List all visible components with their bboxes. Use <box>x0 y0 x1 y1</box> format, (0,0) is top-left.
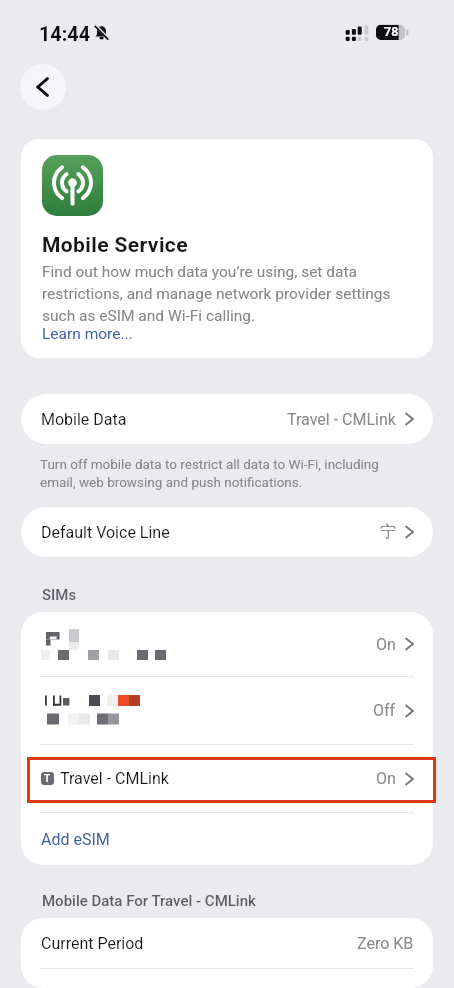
staticText: SIMs <box>42 586 77 604</box>
staticText: Current Period <box>41 934 144 953</box>
staticText: Mobile Data For Travel - CMLink <box>42 892 256 910</box>
staticText: Add eSIM <box>41 830 110 849</box>
button[interactable]: Default Voice Line <box>21 507 433 557</box>
staticText: 宁 <box>380 522 396 542</box>
button[interactable]: Add eSIM <box>21 813 433 865</box>
staticText: Mobile Data <box>41 410 127 429</box>
button[interactable]: Back <box>20 64 66 110</box>
button[interactable]: Learn more... <box>42 325 133 343</box>
button[interactable]: On <box>21 612 433 676</box>
button[interactable]: Off <box>21 677 433 744</box>
staticText: On <box>376 635 396 654</box>
staticText: 14:44 <box>39 23 91 46</box>
staticText: Off <box>373 701 396 720</box>
staticText: Find out how much data you’re using, set… <box>42 263 391 325</box>
button[interactable]: T <box>21 745 433 812</box>
staticText: Mobile Service <box>42 233 188 258</box>
staticText: Zero KB <box>357 934 414 953</box>
staticText: 78 <box>384 24 399 39</box>
staticText: T <box>44 773 51 785</box>
staticText: Travel - CMLink <box>60 769 169 788</box>
button[interactable]: Mobile Data <box>21 394 433 444</box>
staticText: Turn off mobile data to restrict all dat… <box>40 456 379 490</box>
button[interactable]: Current Period <box>21 918 433 968</box>
staticText: Travel - CMLink <box>287 410 396 429</box>
staticText: Default Voice Line <box>41 523 170 542</box>
staticText: On <box>376 769 396 788</box>
